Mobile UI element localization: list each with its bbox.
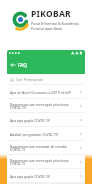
button[interactable]: Back xyxy=(9,61,16,68)
button[interactable]: Cari Pertanyaan xyxy=(7,74,85,84)
staticText: PIKOBAR xyxy=(31,8,71,20)
staticText: Apa saja gejala COVID-19? xyxy=(10,118,78,122)
staticText: Adakah pengobatan COVID-19? xyxy=(10,132,78,136)
staticText: Pusat Informasi & Koordinasi xyxy=(31,21,79,26)
button[interactable]: Bagaimana cara mencegah penularan COVID-… xyxy=(7,99,85,112)
button[interactable]: Bagaimana cara mencegah penularan COVID-… xyxy=(7,155,85,168)
staticText: Provinsi Jawa Barat xyxy=(31,26,63,31)
button[interactable]: Apa saja gejala COVID-19? xyxy=(7,113,85,126)
button[interactable]: Apa itu Novel Coronavirus (2019-nCoV)? xyxy=(7,85,85,98)
staticText: FAQ xyxy=(18,62,27,68)
button[interactable]: Adakah pengobatan COVID-19? xyxy=(7,127,85,140)
staticText: Cari Pertanyaan xyxy=(16,77,43,82)
button[interactable]: Bagaimana cara merawat diri sendiri COVI… xyxy=(7,141,85,154)
staticText: Bagaimana cara merawat diri sendiri COVI… xyxy=(10,144,78,152)
staticText: Apa saja gejala COVID-19? xyxy=(10,174,78,178)
button[interactable]: Apa saja gejala COVID-19? xyxy=(7,169,85,182)
staticText: Bagaimana cara mencegah penularan COVID-… xyxy=(10,158,78,166)
staticText: Apa itu Novel Coronavirus (2019-nCoV)? xyxy=(10,90,78,94)
staticText: Bagaimana cara mencegah penularan COVID-… xyxy=(10,102,78,110)
